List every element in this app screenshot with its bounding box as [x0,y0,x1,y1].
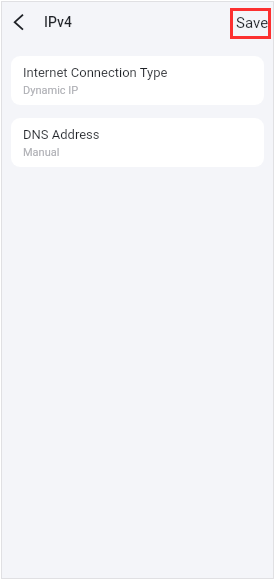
button[interactable]: DNS Address [11,118,264,167]
staticText: Dynamic IP [23,84,79,97]
staticText: Save [236,14,269,32]
button[interactable]: Back [4,4,40,40]
button[interactable]: Save [230,8,271,39]
staticText: Manual [23,146,60,159]
staticText: Internet Connection Type [23,65,168,80]
staticText: IPv4 [44,14,72,30]
staticText: DNS Address [23,127,100,142]
button[interactable]: Internet Connection Type [11,56,264,105]
